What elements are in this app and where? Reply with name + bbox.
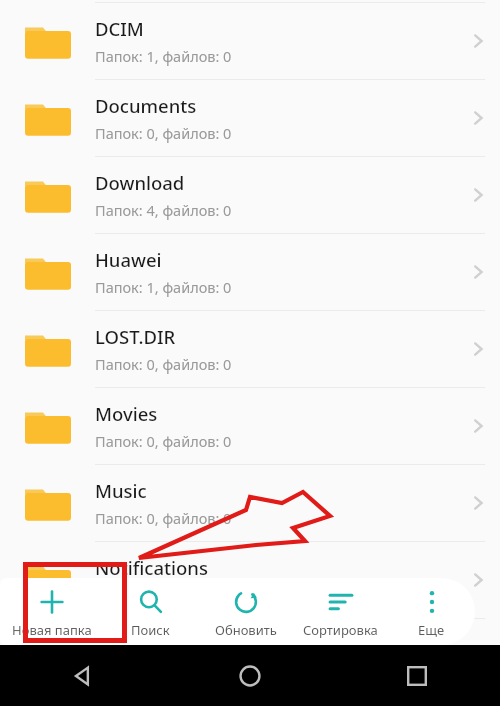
button[interactable]: Еще xyxy=(388,578,475,645)
staticText: Папок: 1, файлов: 0 xyxy=(95,277,232,297)
staticText: Поиск xyxy=(131,621,170,639)
staticText: Сортировка xyxy=(303,621,378,639)
staticText: Папок: 0, файлов: 0 xyxy=(95,354,232,374)
button[interactable]: Download xyxy=(0,158,500,231)
button[interactable]: Movies xyxy=(0,389,500,462)
staticText: Huawei xyxy=(95,247,162,272)
button[interactable]: LOST.DIR xyxy=(0,312,500,385)
button[interactable]: Home xyxy=(166,645,333,706)
button[interactable]: DCIM xyxy=(0,4,500,77)
staticText: Еще xyxy=(418,621,445,639)
button[interactable]: Documents xyxy=(0,81,500,154)
staticText: Notifications xyxy=(95,555,208,580)
staticText: Папок: 0, файлов: 0 xyxy=(95,123,232,143)
button[interactable]: Huawei xyxy=(0,235,500,308)
staticText: LOST.DIR xyxy=(95,324,176,349)
staticText: Папок: 0, файлов: 0 xyxy=(95,431,232,451)
button[interactable]: Обновить xyxy=(198,578,293,645)
staticText: Папок: 4, файлов: 0 xyxy=(95,200,232,220)
staticText: Download xyxy=(95,170,185,195)
staticText: DCIM xyxy=(95,16,144,41)
staticText: Папок: 1, файлов: 0 xyxy=(95,46,232,66)
button[interactable]: Новая папка xyxy=(0,578,103,645)
button[interactable]: Back xyxy=(0,645,166,706)
button[interactable]: Music xyxy=(0,466,500,539)
staticText: Папок: 0, файлов: 0 xyxy=(95,585,232,605)
staticText: Documents xyxy=(95,93,197,118)
staticText: Обновить xyxy=(215,621,277,639)
staticText: Movies xyxy=(95,401,158,426)
button[interactable]: Notifications xyxy=(0,543,500,616)
staticText: Music xyxy=(95,478,147,503)
staticText: Новая папка xyxy=(12,621,92,639)
button[interactable]: Сортировка xyxy=(293,578,388,645)
staticText: Папок: 0, файлов: 0 xyxy=(95,508,232,528)
button[interactable]: Поиск xyxy=(103,578,198,645)
button[interactable]: Recent apps xyxy=(333,645,500,706)
